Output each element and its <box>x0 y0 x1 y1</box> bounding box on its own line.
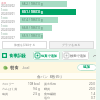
staticText: 1日前 <box>1 24 8 28</box>
staticText: 108 kcal <box>28 82 40 86</box>
staticText: 1日前 <box>1 16 8 20</box>
button[interactable]: 写真で追加 <box>35 51 58 60</box>
staticText: 20.0 g <box>89 82 98 86</box>
staticText: 体重を記録する <box>14 43 36 47</box>
button[interactable]: 食事記録 <box>2 53 26 58</box>
staticText: 2024/03/01 <box>1 12 15 16</box>
button[interactable]: 体重を記録する <box>2 41 47 49</box>
button[interactable]: 1日前 <box>0 8 96 16</box>
staticText: 2024/03/02 <box>1 4 15 8</box>
staticText: 2024/02/28 <box>1 28 15 32</box>
staticText: 炭水化物 <box>44 82 56 86</box>
staticText: 1日前 <box>1 8 8 12</box>
staticText: グラフを見る <box>62 43 81 47</box>
staticText: 66.8 / 1867.0 g <box>22 26 43 30</box>
staticText: 朝食 <box>10 65 19 70</box>
staticText: たんぱく質 <box>2 87 18 91</box>
staticText: 塩分 <box>44 96 50 100</box>
staticText: 0.7 g <box>91 96 98 100</box>
staticText: 食パン 8枚切り <box>37 74 63 79</box>
staticText: 食物繊維 <box>44 92 56 96</box>
staticText: 2024/02/27 <box>1 36 15 40</box>
button[interactable]: 今日 <box>0 0 96 8</box>
staticText: 脂質 <box>2 92 8 96</box>
staticText: 68.2 / 1867.0 g <box>22 2 43 6</box>
staticText: 食事記録 <box>9 53 26 58</box>
button[interactable]: 折りたたむ <box>91 52 98 59</box>
staticText: 1.4 g <box>91 92 98 96</box>
button[interactable]: グラフを見る <box>49 41 94 49</box>
button[interactable]: 1日前 <box>0 24 96 32</box>
button[interactable]: 1日前 <box>0 16 96 24</box>
button[interactable]: 朝食 <box>3 62 97 73</box>
staticText: 69.1 / 1867.0 g <box>22 10 43 14</box>
staticText: 追加 <box>83 65 91 70</box>
button[interactable]: 追加 <box>77 64 97 71</box>
staticText: 2024/02/29 <box>1 20 15 24</box>
staticText: カロリー <box>2 82 15 86</box>
staticText: -kcal <box>22 65 30 70</box>
staticText: 1日前 <box>1 32 8 36</box>
staticText: 今日 <box>1 1 7 4</box>
staticText: 2.5 g <box>33 92 40 96</box>
staticText: 検索で追加 <box>70 54 87 58</box>
staticText: 写真で追加 <box>41 54 58 58</box>
button[interactable]: 検索で追加 <box>64 51 87 60</box>
staticText: 67.4 / 1867.0 g <box>22 18 43 22</box>
button[interactable]: 1日前 <box>0 32 96 40</box>
staticText: 9.6 g <box>33 87 40 91</box>
staticText: 65.9 / 1867.0 g <box>22 34 43 38</box>
staticText: 糖質 <box>44 87 50 91</box>
staticText: 20.0 g <box>89 87 98 91</box>
